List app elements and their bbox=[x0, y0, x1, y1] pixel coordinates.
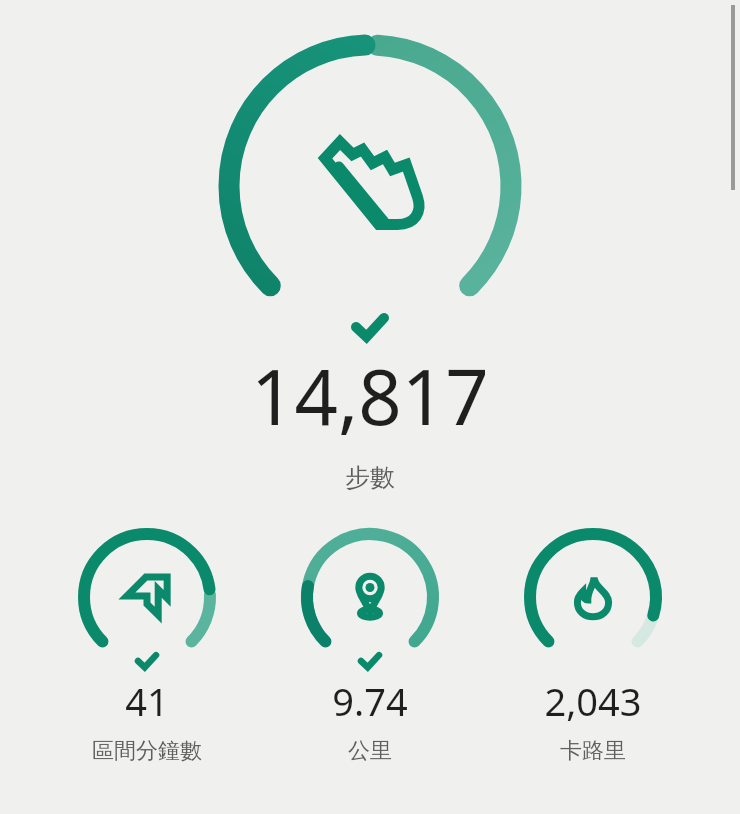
staticText: 14,817 bbox=[251, 344, 489, 448]
staticText: 公里 bbox=[348, 737, 392, 765]
button[interactable]: 步數 14,817 bbox=[200, 14, 540, 344]
staticText: 步數 bbox=[345, 462, 395, 493]
staticText: 41 bbox=[125, 675, 169, 727]
button[interactable]: 公里 9.74 bbox=[294, 521, 446, 765]
staticText: 9.74 bbox=[332, 675, 408, 727]
button[interactable]: 區間分鐘數 41 bbox=[71, 521, 223, 765]
staticText: 區間分鐘數 bbox=[92, 737, 202, 765]
button[interactable]: 卡路里 2,043 bbox=[517, 521, 669, 765]
staticText: 2,043 bbox=[544, 675, 642, 727]
staticText: 卡路里 bbox=[560, 737, 626, 765]
